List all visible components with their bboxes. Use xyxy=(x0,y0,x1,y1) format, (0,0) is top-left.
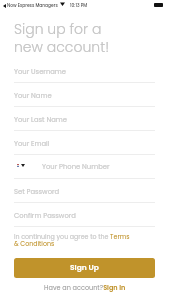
staticText: Sign Up xyxy=(70,262,99,272)
staticText: Your Email xyxy=(14,139,50,149)
other: Country flag xyxy=(17,161,25,169)
staticText: Your Username xyxy=(14,67,67,77)
staticText: Now Express Managers xyxy=(7,2,58,8)
button[interactable]: Your Last Name xyxy=(14,107,155,131)
button[interactable]: Country flag xyxy=(14,155,155,179)
staticText: 10:13 PM xyxy=(70,2,88,8)
staticText: Set Password xyxy=(14,187,60,197)
button[interactable]: Sign Up xyxy=(14,258,155,278)
button[interactable]: In continuing you agree to the Terms & C… xyxy=(14,232,132,248)
other: Wi-Fi xyxy=(60,2,65,6)
button[interactable]: Confirm Password xyxy=(14,203,155,227)
button[interactable]: Your Name xyxy=(14,83,155,107)
other: Battery xyxy=(154,3,163,7)
other: Back xyxy=(3,4,6,8)
button[interactable]: Have an account?Sign In xyxy=(44,283,126,292)
button[interactable]: Your Username xyxy=(14,59,155,83)
staticText: Your Phone Number xyxy=(42,162,110,172)
button[interactable]: Set Password xyxy=(14,179,155,203)
staticText: Your Last Name xyxy=(14,115,67,125)
staticText: Sign up for a new account! xyxy=(14,19,110,57)
other: Select country code xyxy=(21,164,25,167)
staticText: Your Name xyxy=(14,91,52,101)
button[interactable]: Your Email xyxy=(14,131,155,155)
staticText: Confirm Password xyxy=(14,211,76,221)
